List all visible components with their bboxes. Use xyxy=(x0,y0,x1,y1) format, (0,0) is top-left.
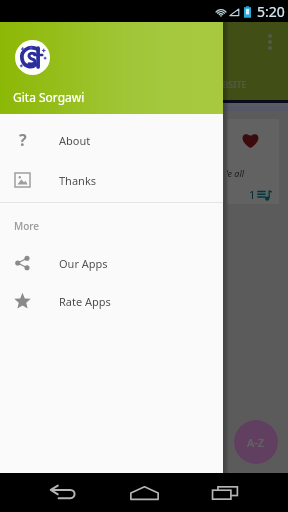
button[interactable]: Rate Apps xyxy=(0,282,223,320)
button[interactable]: LYRICS xyxy=(8,77,96,91)
staticText: About xyxy=(59,133,91,148)
staticText: 1 xyxy=(249,187,256,202)
staticText: More xyxy=(14,219,40,233)
staticText: LYRICS xyxy=(37,78,67,90)
button[interactable]: Back xyxy=(43,473,83,512)
button[interactable]: Home xyxy=(124,473,164,512)
staticText: ? xyxy=(19,129,27,151)
button[interactable]: Our Apps xyxy=(0,244,223,282)
staticText: 1 xyxy=(29,187,36,202)
staticText: 5:20 xyxy=(257,2,285,21)
button[interactable]: WEBSITE xyxy=(184,77,272,91)
staticText: We all need… xyxy=(7,167,52,179)
button[interactable]: Recents xyxy=(205,473,245,512)
button[interactable]: We all need… xyxy=(7,119,59,204)
staticText: Gita Sorgawi xyxy=(13,89,85,105)
button[interactable]: Sort A-Z xyxy=(234,420,278,464)
button[interactable]: We all need… xyxy=(62,119,114,204)
button[interactable]: FAVORITE xyxy=(96,77,184,91)
staticText: We all need… xyxy=(227,167,272,179)
staticText: A-Z xyxy=(247,435,265,450)
staticText: Rate Apps xyxy=(59,294,111,309)
button[interactable]: We all need… xyxy=(172,119,224,204)
button[interactable]: More options xyxy=(258,30,282,54)
button[interactable]: Thanks xyxy=(0,161,223,199)
staticText: Thanks xyxy=(59,173,97,188)
button[interactable]: We all need… xyxy=(227,119,279,204)
staticText: We all need… xyxy=(62,167,107,179)
staticText: Our Apps xyxy=(59,256,108,271)
staticText: WEBSITE xyxy=(209,78,247,90)
button[interactable]: ? xyxy=(0,121,223,159)
